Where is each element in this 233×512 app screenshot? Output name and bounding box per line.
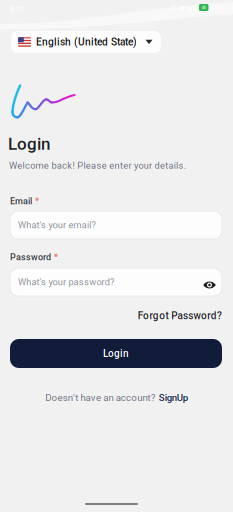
staticText: Login	[8, 134, 50, 154]
staticText: 4:51	[10, 5, 24, 13]
staticText: *	[54, 252, 58, 262]
staticText: Forgot Password?	[138, 310, 222, 322]
button[interactable]: SignUp	[159, 392, 188, 403]
staticText: Email	[10, 196, 32, 206]
staticText: Login	[103, 348, 129, 359]
button[interactable]: What's your email?	[10, 211, 222, 239]
staticText: 5G	[170, 5, 176, 10]
staticText: SignUp	[159, 392, 188, 403]
staticText: Password	[10, 252, 51, 262]
button[interactable]: English (United State)	[11, 31, 161, 53]
staticText: English (United State)	[36, 36, 137, 48]
staticText: What's your password?	[18, 277, 114, 287]
staticText: *	[35, 196, 39, 206]
button[interactable]: What's your password?	[10, 268, 222, 296]
button[interactable]: Login	[10, 339, 222, 368]
button[interactable]: Forgot Password?	[138, 310, 222, 322]
staticText: Welcome back! Please enter your details.	[9, 160, 186, 171]
staticText: Doesn't have an account?	[45, 392, 156, 403]
staticText: 45	[202, 5, 206, 10]
staticText: What's your email?	[18, 220, 95, 230]
